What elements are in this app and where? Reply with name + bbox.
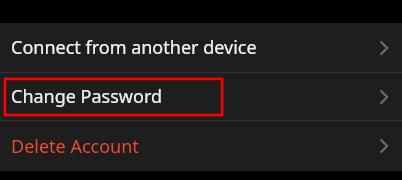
other: Delete Account <box>377 137 395 155</box>
staticText: Change Password <box>11 84 163 109</box>
staticText: Delete Account <box>11 134 139 159</box>
button[interactable]: Change Password <box>0 73 402 120</box>
button[interactable]: Delete Account <box>0 121 402 171</box>
button[interactable]: Connect from another device <box>0 23 402 72</box>
other: Connect from another device <box>377 39 395 57</box>
other: Change Password <box>377 88 395 106</box>
staticText: Connect from another device <box>11 35 257 60</box>
